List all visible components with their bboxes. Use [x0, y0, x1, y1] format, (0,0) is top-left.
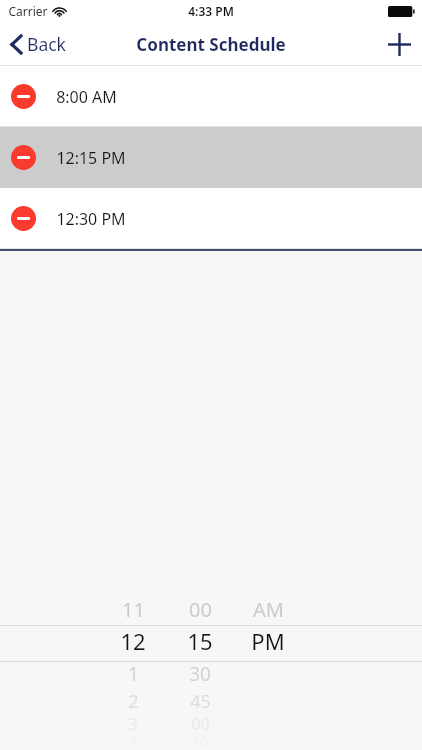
button[interactable]: Delete 12:15 PM [0, 127, 422, 188]
button[interactable]: Delete 12:30 PM [11, 206, 36, 231]
staticText: AM [253, 596, 284, 623]
staticText: Carrier [8, 3, 48, 19]
staticText: 8:00 AM [56, 86, 117, 108]
staticText: 1 [128, 661, 139, 687]
staticText: 12:30 PM [56, 208, 126, 230]
staticText: 15 [187, 626, 213, 656]
staticText: 00 [191, 713, 210, 735]
staticText: 30 [189, 661, 211, 687]
button[interactable]: Back [0, 22, 78, 66]
staticText: Back [27, 32, 66, 56]
staticText: 2 [128, 689, 139, 714]
button[interactable]: Delete 12:15 PM [11, 145, 36, 170]
staticText: PM [251, 626, 285, 656]
staticText: 00 [189, 596, 212, 623]
button[interactable]: Delete 8:00 AM [11, 84, 36, 109]
button[interactable]: Add schedule [376, 22, 422, 66]
staticText: 4:33 PM [188, 3, 234, 19]
button[interactable]: Delete 12:30 PM [0, 188, 422, 249]
staticText: Content Schedule [136, 33, 286, 56]
staticText: 45 [190, 689, 211, 714]
staticText: 12 [120, 626, 146, 656]
staticText: 12:15 PM [56, 147, 126, 169]
button[interactable]: Delete 8:00 AM [0, 66, 422, 127]
staticText: 11 [122, 596, 145, 623]
staticText: 3 [128, 713, 138, 735]
